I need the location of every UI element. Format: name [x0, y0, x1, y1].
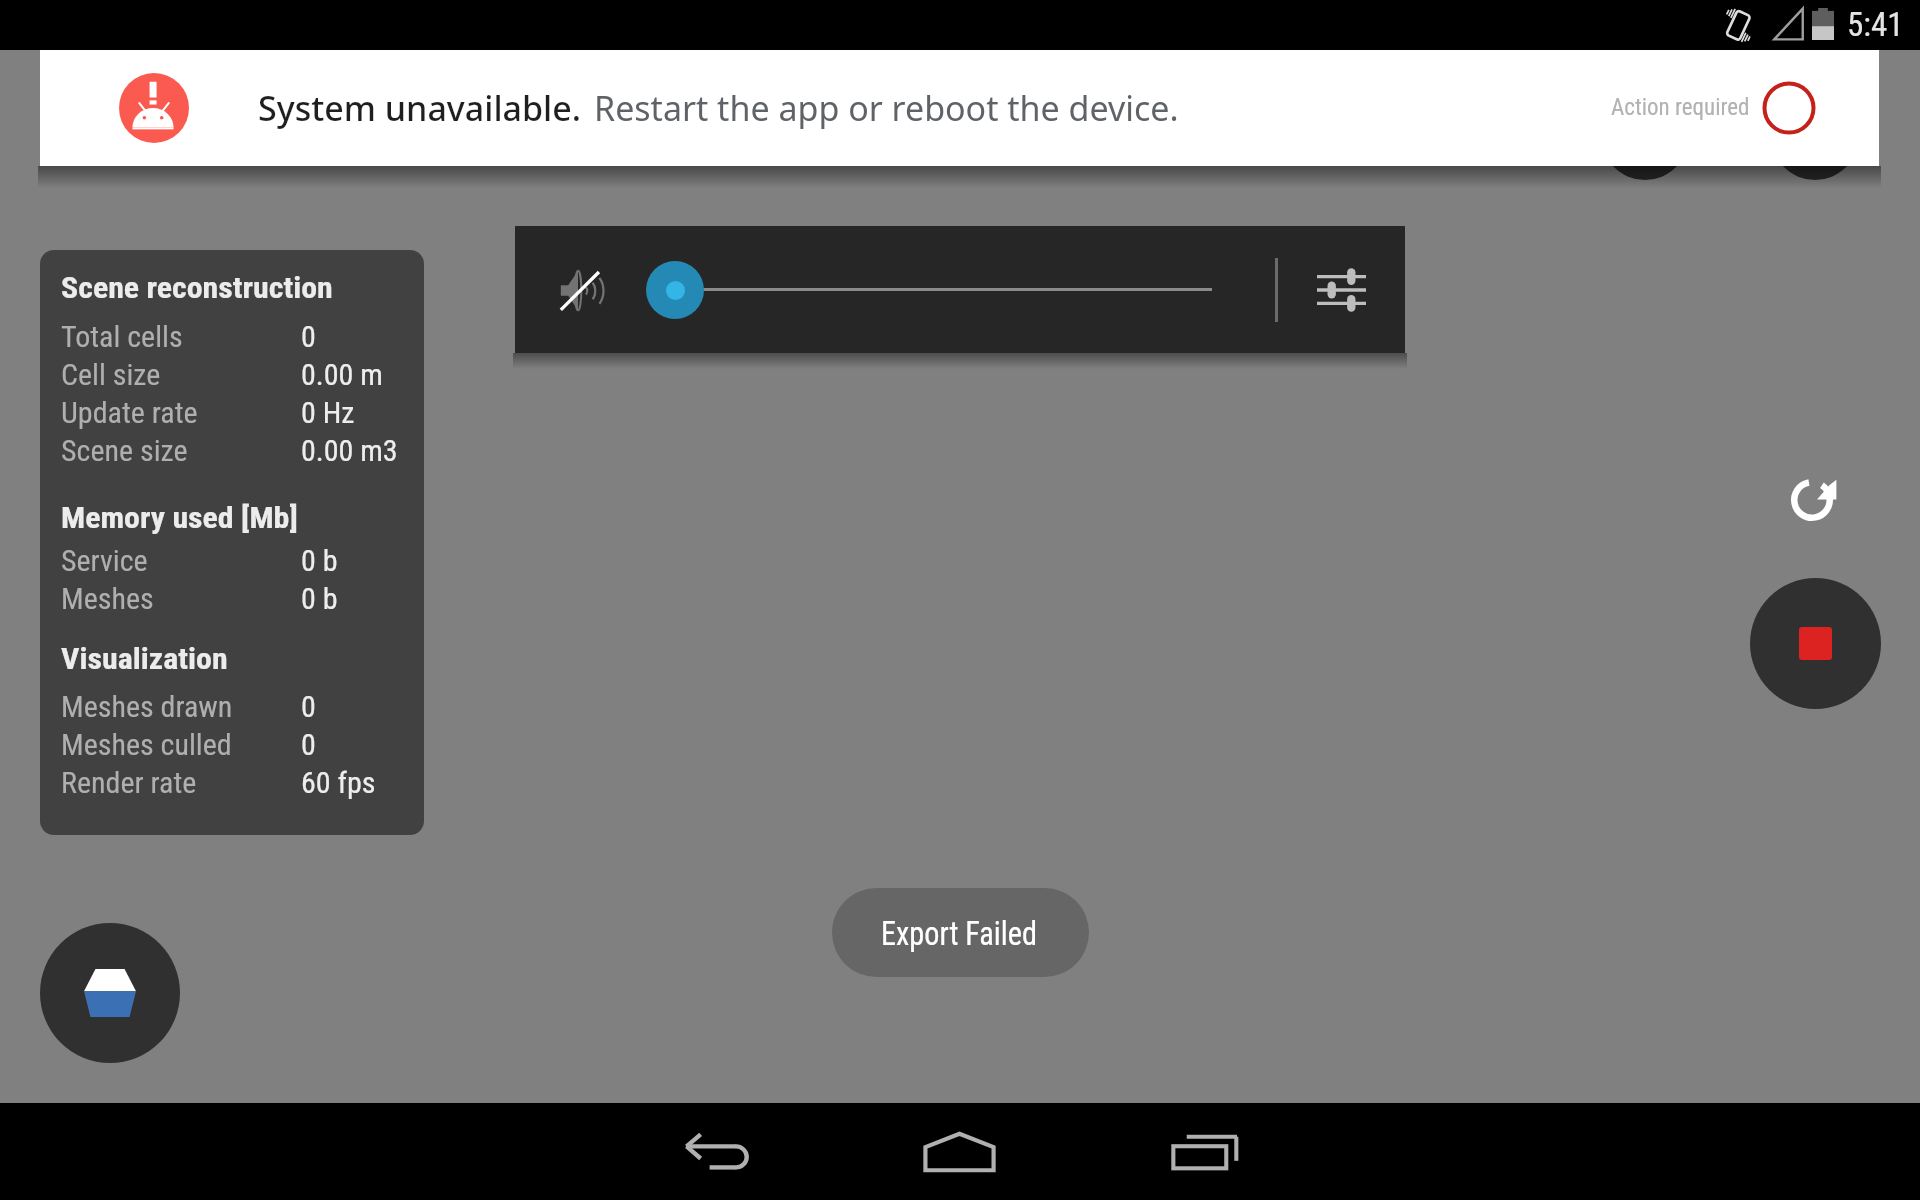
button[interactable]: Show mesh	[40, 923, 180, 1063]
staticText: Meshes	[61, 581, 154, 616]
button[interactable]: Recent apps	[1143, 1113, 1268, 1190]
staticText: 0 b	[301, 543, 338, 578]
staticText: System unavailable.	[258, 85, 582, 131]
staticText: Service	[61, 543, 148, 578]
button[interactable]: Mute	[540, 250, 620, 330]
button[interactable]: Toggle map	[1601, 92, 1689, 180]
staticText: 0 b	[301, 581, 338, 616]
staticText: Scene size	[61, 433, 188, 468]
button[interactable]: Back	[653, 1113, 778, 1190]
staticText: Export Failed	[881, 913, 1038, 953]
staticText: 0.00 m	[301, 357, 383, 392]
button[interactable]: Home	[897, 1113, 1022, 1190]
staticText: Render rate	[61, 765, 197, 800]
staticText: Meshes culled	[61, 727, 232, 762]
staticText: Total cells	[61, 319, 183, 354]
staticText: Action required	[1611, 94, 1750, 121]
staticText: Memory used [Mb]	[61, 501, 299, 535]
staticText: 0 Hz	[301, 395, 355, 430]
staticText: Cell size	[61, 357, 161, 392]
staticText: 0	[301, 727, 316, 762]
staticText: 0	[301, 689, 316, 724]
staticText: Meshes drawn	[61, 689, 233, 724]
button[interactable]: System unavailable.	[40, 50, 1879, 166]
staticText: Update rate	[61, 395, 198, 430]
button[interactable]: Audio settings	[1301, 250, 1381, 330]
button[interactable]: Toggle camera	[1771, 92, 1859, 180]
button[interactable]: Stop recording	[1750, 578, 1881, 709]
button[interactable]: Reload	[1770, 458, 1858, 546]
staticText: Scene reconstruction	[61, 271, 334, 305]
staticText: 0.00 m3	[301, 433, 398, 468]
staticText: 0	[301, 319, 316, 354]
button[interactable]	[646, 261, 704, 319]
staticText: Restart the app or reboot the device.	[594, 85, 1179, 131]
staticText: Visualization	[61, 642, 228, 676]
staticText: 60 fps	[301, 765, 376, 800]
staticText: 5:41	[1847, 5, 1904, 44]
